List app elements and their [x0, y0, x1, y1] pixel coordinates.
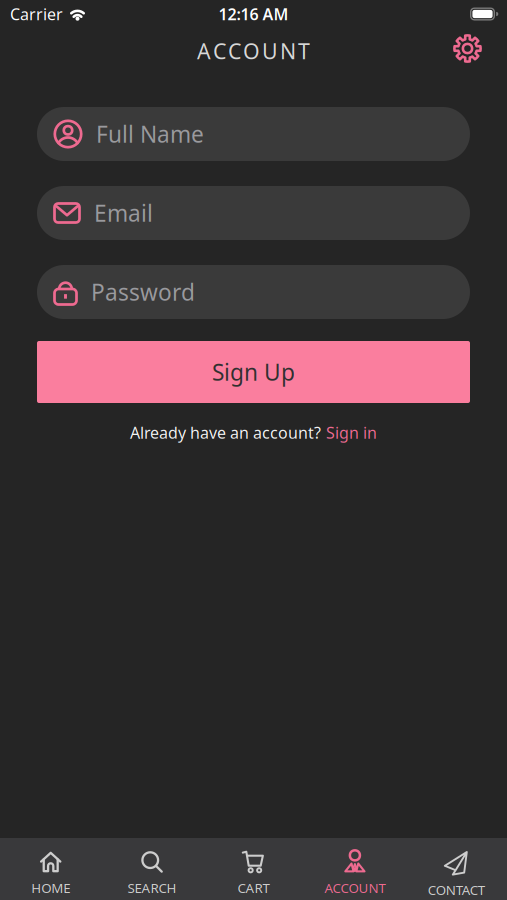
staticText: SEARCH [128, 879, 177, 897]
button[interactable]: Sign Up [37, 341, 470, 403]
staticText: A C C O U N T [197, 37, 310, 65]
button[interactable]: HOME [0, 838, 101, 900]
button[interactable]: CART [203, 838, 304, 900]
staticText: ACCOUNT [324, 879, 385, 897]
staticText: CART [237, 879, 269, 897]
staticText: Full Name [96, 119, 204, 149]
staticText: CONTACT [428, 881, 485, 899]
button[interactable]: Full Name [37, 107, 470, 161]
button[interactable]: Password [37, 265, 470, 319]
button[interactable]: Email [37, 186, 470, 240]
button[interactable]: SEARCH [101, 838, 203, 900]
staticText: Email [94, 198, 153, 228]
staticText: Carrier [10, 3, 63, 25]
staticText: Password [91, 277, 195, 307]
staticText: Already have an account? [130, 422, 321, 443]
button[interactable]: CONTACT [406, 838, 507, 900]
staticText: HOME [31, 879, 70, 897]
button[interactable]: ACCOUNT [304, 838, 406, 900]
button[interactable]: Sign in [326, 422, 377, 443]
staticText: Sign in [326, 422, 377, 443]
staticText: 12:16 AM [218, 3, 288, 25]
staticText: Sign Up [212, 357, 295, 387]
button[interactable]: Settings [453, 34, 482, 68]
